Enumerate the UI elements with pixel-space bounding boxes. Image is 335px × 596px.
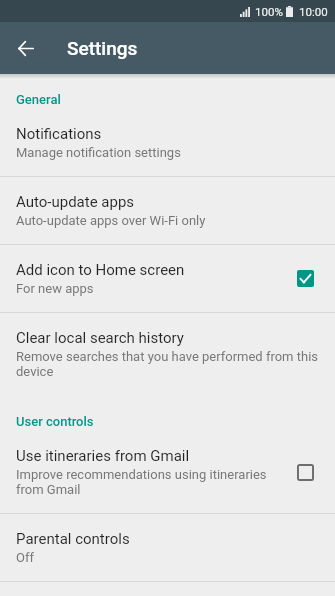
button[interactable]: Use itineraries from Gmail, unchecked — [297, 464, 319, 481]
button[interactable]: Add icon to Home screen, checked — [297, 270, 319, 287]
button[interactable]: Use itineraries from Gmail — [0, 431, 335, 513]
staticText: User controls — [16, 414, 94, 429]
button[interactable]: Parental controls — [0, 514, 335, 581]
button[interactable]: Clear local search history — [0, 313, 335, 395]
staticText: Add icon to Home screen — [16, 261, 185, 279]
button[interactable]: Add icon to Home screen — [0, 245, 335, 312]
staticText: Use itineraries from Gmail — [16, 447, 190, 465]
button[interactable]: Navigate up — [6, 28, 46, 68]
staticText: Settings — [67, 37, 138, 59]
staticText: Auto-update apps over Wi-Fi only — [16, 213, 206, 228]
staticText: General — [16, 92, 61, 107]
staticText: 100% — [255, 5, 283, 18]
staticText: Parental controls — [16, 530, 130, 548]
staticText: 10:00 — [299, 5, 328, 18]
button[interactable]: Notifications — [0, 109, 335, 176]
staticText: Auto-update apps — [16, 193, 135, 211]
staticText: Notifications — [16, 125, 102, 143]
staticText: Improve recommendations using itinerarie… — [16, 467, 297, 497]
staticText: Clear local search history — [16, 329, 184, 347]
staticText: Manage notification settings — [16, 145, 181, 160]
staticText: Off — [16, 550, 34, 565]
staticText: For new apps — [16, 281, 94, 296]
button[interactable]: Auto-update apps — [0, 177, 335, 244]
staticText: Remove searches that you have performed … — [16, 349, 319, 379]
